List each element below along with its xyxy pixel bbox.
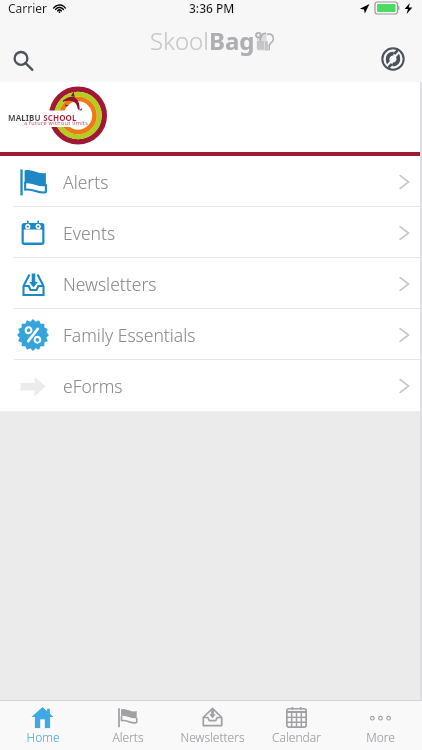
button[interactable]: Search <box>5 43 41 79</box>
button[interactable]: Events <box>0 207 422 258</box>
staticText: Home <box>26 729 60 745</box>
button[interactable]: Alerts <box>85 701 170 750</box>
staticText: 3:36 PM <box>189 0 235 16</box>
button[interactable]: Family Essentials <box>0 309 422 360</box>
staticText: Family Essentials <box>63 323 196 347</box>
button[interactable]: Newsletters <box>0 258 422 309</box>
button[interactable]: More <box>338 701 422 750</box>
staticText: Newsletters <box>63 272 157 296</box>
staticText: Calendar <box>272 729 321 745</box>
button[interactable]: Newsletters <box>170 701 254 750</box>
staticText: Carrier <box>8 0 48 16</box>
staticText: Bag <box>209 24 255 57</box>
staticText: Events <box>63 221 116 245</box>
staticText: Alerts <box>112 729 144 745</box>
staticText: Newsletters <box>180 729 245 745</box>
button[interactable]: Alerts <box>0 156 422 207</box>
button[interactable]: Refresh <box>375 41 411 77</box>
staticText: Alerts <box>63 170 109 194</box>
button[interactable]: eForms <box>0 360 422 411</box>
button[interactable]: Home <box>0 701 85 750</box>
staticText: MALIBU <box>8 112 41 123</box>
staticText: SCHOOL <box>41 112 77 123</box>
staticText: a future without limits <box>24 119 89 126</box>
staticText: More <box>366 729 395 745</box>
button[interactable]: Calendar <box>254 701 338 750</box>
staticText: eForms <box>63 374 123 398</box>
staticText: Skool <box>150 24 209 57</box>
